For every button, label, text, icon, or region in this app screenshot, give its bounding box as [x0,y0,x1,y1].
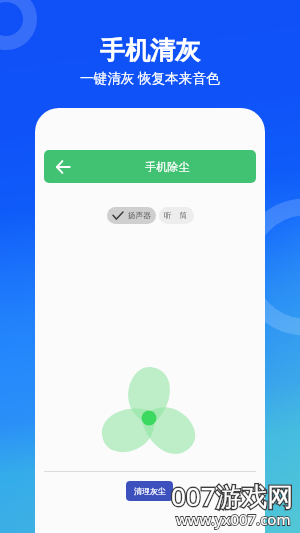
staticText: 一键清灰 恢复本来音色 [80,68,220,87]
staticText: www.yx007.com [176,509,291,529]
staticText: 扬声器 [128,211,151,221]
staticText: 007游戏网 [171,478,294,514]
staticText: 手机除尘 [145,160,190,174]
button[interactable]: Back [50,154,76,180]
button[interactable]: Back [44,150,256,183]
staticText: 007游戏网 [171,478,294,514]
staticText: 听筒 [164,211,194,221]
button[interactable]: 清理灰尘 [126,481,173,501]
staticText: www.yx007.com [176,509,291,529]
staticText: 手机清灰 [100,35,200,66]
button[interactable]: 听筒 [159,207,194,224]
button[interactable]: 扬声器 [107,207,156,224]
staticText: 清理灰尘 [134,486,166,496]
